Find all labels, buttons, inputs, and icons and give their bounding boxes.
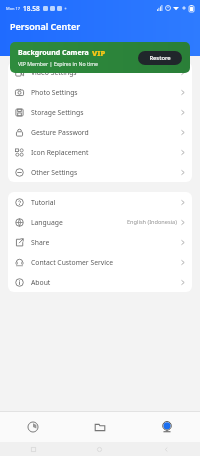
staticText: Share xyxy=(31,238,50,247)
staticText: VIP xyxy=(92,48,106,58)
button[interactable]: Camera xyxy=(0,412,66,442)
button[interactable]: Background Camera xyxy=(10,42,190,73)
button[interactable]: Other Settings xyxy=(8,162,192,182)
staticText: Video Settings xyxy=(31,68,77,77)
staticText: Language xyxy=(31,218,63,227)
staticText: English (Indonesia) xyxy=(127,218,177,226)
button[interactable]: Storage Settings xyxy=(8,102,192,122)
button[interactable]: Icon Replacement xyxy=(8,142,192,162)
staticText: About xyxy=(31,278,51,287)
staticText: Storage Settings xyxy=(31,108,84,117)
staticText: Gesture Password xyxy=(31,128,89,137)
staticText: Background Camera xyxy=(18,48,89,58)
staticText: Restore xyxy=(149,54,171,62)
staticText: Personal Center xyxy=(10,20,81,32)
staticText: 18.58 xyxy=(23,4,40,13)
staticText: Other Settings xyxy=(31,168,78,177)
button[interactable]: Restore xyxy=(138,51,182,65)
button[interactable]: Contact Customer Service xyxy=(8,252,192,272)
button[interactable]: Gesture Password xyxy=(8,122,192,142)
button[interactable]: Share xyxy=(8,232,192,252)
button[interactable]: Language xyxy=(8,212,192,232)
staticText: Photo Settings xyxy=(31,88,78,97)
button[interactable]: Files xyxy=(66,412,133,442)
staticText: Contact Customer Service xyxy=(31,258,114,267)
button[interactable]: Video Settings xyxy=(8,62,192,82)
button[interactable]: Tutorial xyxy=(8,192,192,212)
button[interactable]: Personal Center xyxy=(133,412,200,442)
staticText: Tutorial xyxy=(31,198,56,207)
button[interactable]: About xyxy=(8,272,192,292)
staticText: Mon 17 xyxy=(6,6,21,11)
staticText: Icon Replacement xyxy=(31,148,89,157)
button[interactable]: Photo Settings xyxy=(8,82,192,102)
staticText: VIP Member | Expires in No time xyxy=(18,60,98,67)
